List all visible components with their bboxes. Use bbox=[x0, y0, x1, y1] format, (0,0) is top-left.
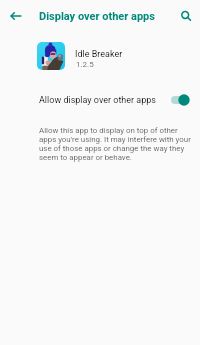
staticText: Allow display over other apps bbox=[39, 95, 157, 106]
staticText: Display over other apps bbox=[39, 10, 155, 23]
button[interactable]: Allow display over other apps bbox=[0, 88, 200, 112]
button[interactable]: Navigate up bbox=[2, 2, 30, 30]
button[interactable]: Allow display over other apps bbox=[171, 93, 190, 107]
staticText: Idle Breaker bbox=[75, 49, 123, 60]
staticText: 1.2.5 bbox=[76, 60, 94, 69]
staticText: Allow this app to display on top of othe… bbox=[39, 126, 195, 162]
button[interactable]: Search bbox=[172, 2, 200, 30]
